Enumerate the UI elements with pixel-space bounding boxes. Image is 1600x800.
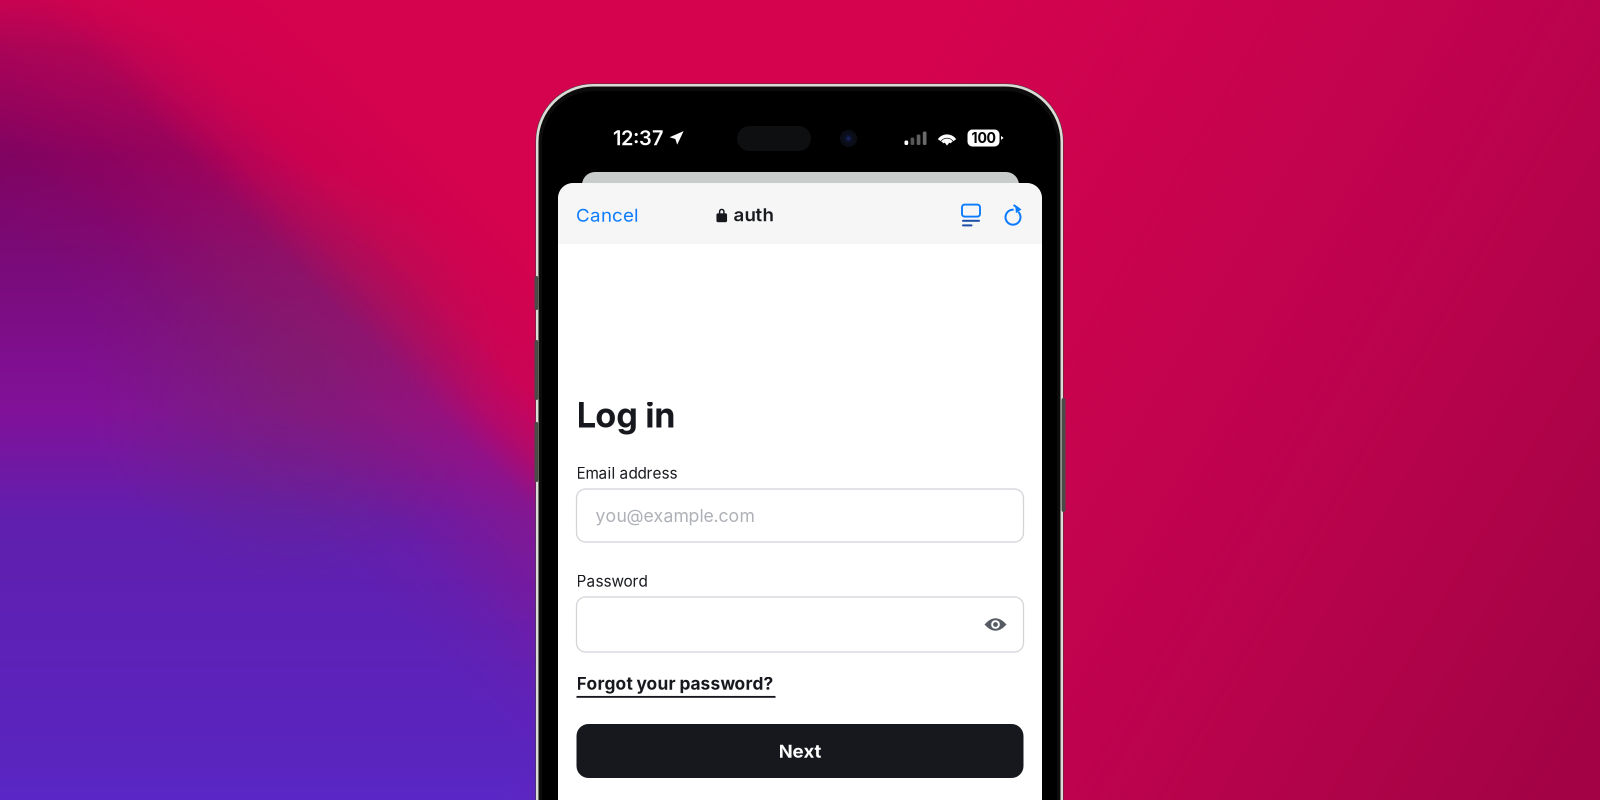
staticText: Password — [576, 572, 647, 590]
button[interactable]: Cancel — [570, 192, 645, 235]
button[interactable]: Show password — [975, 607, 1015, 641]
staticText: Log in — [576, 394, 675, 436]
staticText: 12:37 — [613, 126, 663, 150]
button[interactable]: Reader view — [955, 193, 987, 233]
staticText: Email address — [576, 464, 677, 482]
staticText: you@example.com — [595, 505, 754, 526]
button[interactable]: Forgot your password? — [576, 673, 775, 698]
staticText: auth — [734, 203, 774, 226]
staticText: Forgot your password? — [576, 673, 773, 694]
staticText: Cancel — [576, 204, 639, 226]
button[interactable]: Reload page — [998, 194, 1029, 233]
button[interactable]: Next — [576, 724, 1023, 778]
staticText: Next — [778, 740, 821, 762]
staticText: 100 — [971, 129, 995, 146]
